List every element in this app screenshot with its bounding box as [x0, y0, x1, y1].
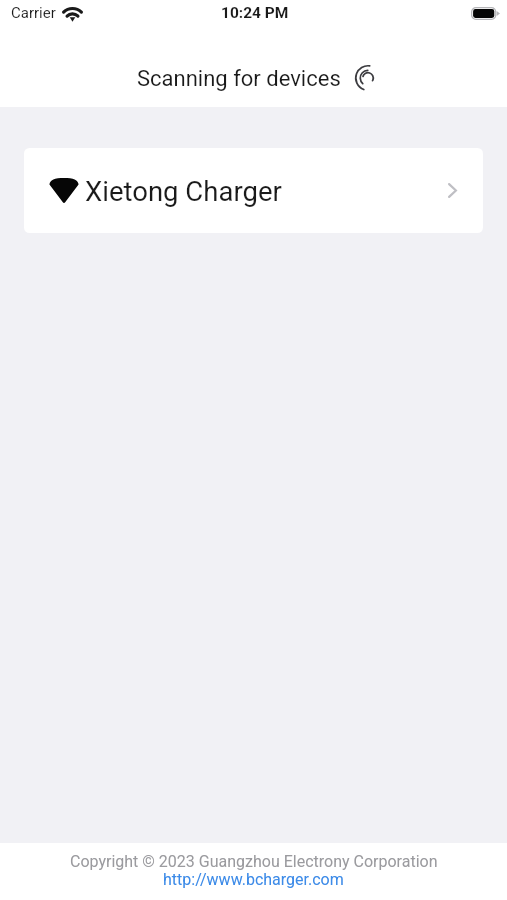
button[interactable]: Xietong Charger — [24, 148, 483, 233]
button[interactable]: http://www.bcharger.com — [159, 869, 348, 890]
staticText: http://www.bcharger.com — [163, 870, 344, 889]
staticText: Copyright © 2023 Guangzhou Electrony Cor… — [70, 852, 438, 871]
other: Battery full — [471, 7, 500, 20]
staticText: Xietong Charger — [85, 175, 282, 207]
staticText: 10:24 PM — [221, 4, 289, 22]
staticText: Carrier — [11, 4, 56, 22]
staticText: Scanning for devices — [137, 66, 341, 92]
other: Wi-Fi connected — [63, 5, 82, 21]
other: Scanning in progress — [354, 64, 382, 92]
